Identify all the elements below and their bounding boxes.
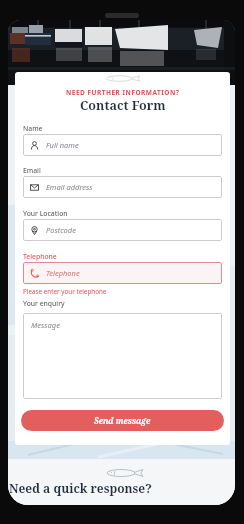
button[interactable]: Telephone bbox=[23, 262, 222, 284]
staticText: Email address bbox=[46, 182, 93, 192]
staticText: Telephone bbox=[23, 252, 57, 261]
staticText: Need a quick response? bbox=[9, 480, 152, 496]
staticText: NEED FURTHER INFORMATION? bbox=[66, 88, 180, 97]
button[interactable]: Email address bbox=[23, 176, 222, 198]
button[interactable]: Message bbox=[23, 313, 222, 399]
staticText: Please enter your telephone bbox=[23, 287, 107, 296]
button[interactable]: Postcode bbox=[23, 219, 222, 241]
button[interactable]: Send message bbox=[21, 410, 224, 431]
staticText: Full name bbox=[46, 140, 79, 150]
staticText: Telephone bbox=[46, 268, 80, 278]
staticText: Message bbox=[31, 320, 60, 330]
staticText: Send message bbox=[94, 415, 151, 426]
staticText: Email bbox=[23, 166, 41, 175]
staticText: Your enquiry bbox=[23, 299, 65, 308]
staticText: Your Location bbox=[23, 209, 68, 218]
button[interactable]: Full name bbox=[23, 134, 222, 156]
staticText: Postcode bbox=[46, 225, 76, 235]
staticText: Name bbox=[23, 124, 43, 133]
staticText: Contact Form bbox=[80, 97, 166, 114]
